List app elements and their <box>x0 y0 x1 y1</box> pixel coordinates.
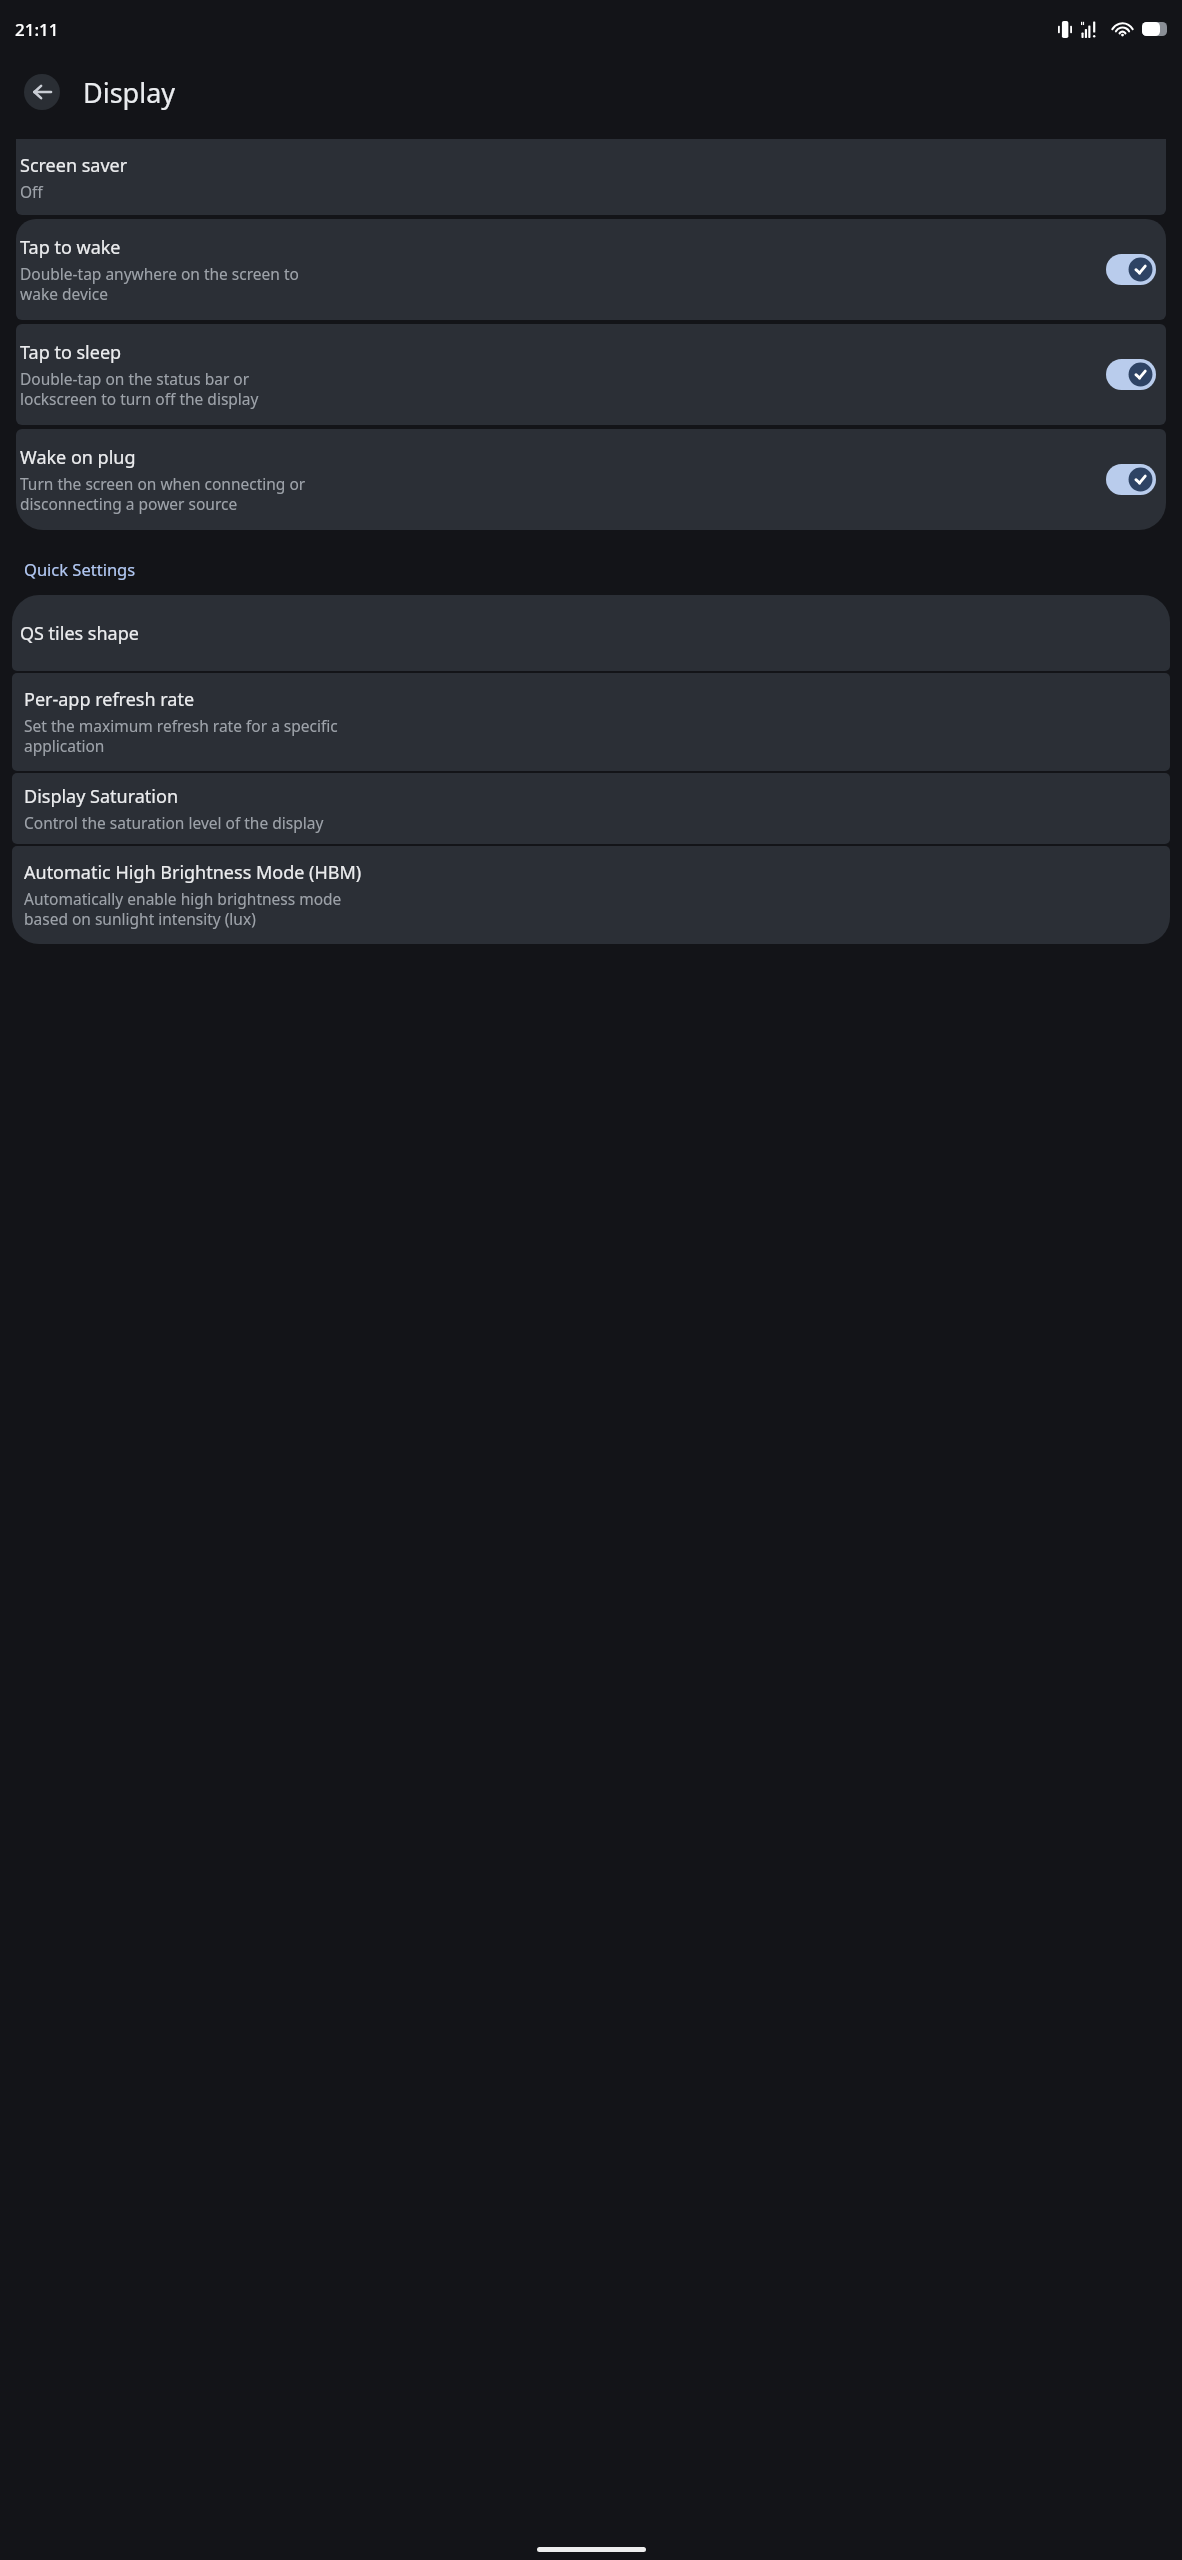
button[interactable]: Automatic High Brightness Mode (HBM) <box>12 846 1170 944</box>
button[interactable]: Toggle setting <box>1106 464 1156 495</box>
button[interactable]: Display Saturation <box>12 773 1170 844</box>
staticText: Automatically enable high brightness mod… <box>24 888 342 930</box>
staticText: Display Saturation <box>24 784 179 809</box>
staticText: Turn the screen on when connecting or di… <box>20 473 306 515</box>
staticText: Quick Settings <box>24 558 136 580</box>
staticText: Set the maximum refresh rate for a speci… <box>24 715 338 757</box>
button[interactable]: Tap to sleep <box>16 324 1166 425</box>
staticText: QS tiles shape <box>20 621 139 646</box>
button[interactable]: Screen saver <box>16 139 1166 215</box>
button[interactable]: Toggle setting <box>1106 254 1156 285</box>
button[interactable]: Toggle setting <box>1106 359 1156 390</box>
staticText: Control the saturation level of the disp… <box>24 812 324 833</box>
staticText: Wake on plug <box>20 445 136 470</box>
staticText: Display <box>83 74 176 111</box>
staticText: Per-app refresh rate <box>24 687 195 712</box>
button[interactable]: Back <box>24 74 60 110</box>
staticText: Tap to wake <box>20 235 121 260</box>
staticText: 21:11 <box>15 18 59 41</box>
button[interactable]: Tap to wake <box>16 219 1166 320</box>
staticText: Double-tap on the status bar or lockscre… <box>20 368 259 410</box>
staticText: Screen saver <box>20 153 128 178</box>
button[interactable]: Wake on plug <box>16 429 1166 530</box>
button[interactable]: QS tiles shape <box>12 595 1170 671</box>
staticText: Tap to sleep <box>20 340 122 365</box>
staticText: Double-tap anywhere on the screen to wak… <box>20 263 299 305</box>
staticText: Off <box>20 181 43 202</box>
button[interactable]: Per-app refresh rate <box>12 673 1170 771</box>
staticText: Automatic High Brightness Mode (HBM) <box>24 860 362 885</box>
